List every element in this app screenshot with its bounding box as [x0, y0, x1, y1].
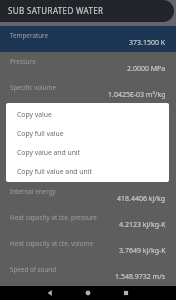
staticText: Speed of sound: [10, 265, 57, 274]
staticText: Heat capacity at cte. volume: [10, 239, 93, 248]
button[interactable]: Specific enthalpy: [0, 130, 176, 156]
staticText: 3.7649 kJ/kg-K: [119, 246, 166, 256]
staticText: 418.4406 kJ/kg: [117, 194, 166, 204]
staticText: Temperature: [10, 31, 49, 40]
staticText: Specific entropy: [10, 161, 57, 170]
button[interactable]: SUB SATURATED WATER: [0, 0, 174, 22]
staticText: Pressure: [10, 57, 36, 66]
button[interactable]: Pressure: [0, 52, 176, 78]
staticText: Copy full value: [17, 129, 64, 138]
button[interactable]: Specific entropy: [0, 156, 176, 182]
staticText: Heat capacity at cte. pressure: [10, 213, 97, 222]
button[interactable]: Copy value: [6, 105, 169, 124]
staticText: Copy value and unit: [17, 148, 81, 157]
button[interactable]: Temperature: [0, 26, 176, 52]
button[interactable]: Internal energy: [0, 182, 176, 208]
button[interactable]: Specific volume: [0, 78, 176, 104]
staticText: 4.2123 kJ/kg-K: [119, 220, 166, 230]
staticText: Density: [10, 109, 33, 118]
button[interactable]: Density: [0, 104, 176, 130]
button[interactable]: Home: [76, 286, 100, 300]
button[interactable]: Back: [38, 286, 62, 300]
staticText: Copy full value and unit: [17, 167, 92, 176]
button[interactable]: Copy value and unit: [6, 143, 169, 162]
button[interactable]: Heat capacity at cte. pressure: [0, 208, 176, 234]
button[interactable]: Recent apps: [114, 286, 138, 300]
staticText: SUB SATURATED WATER: [8, 5, 104, 16]
staticText: 1.548.9732 m/s: [115, 272, 166, 282]
button[interactable]: Speed of sound: [0, 260, 176, 286]
staticText: Copy value: [17, 110, 52, 119]
button[interactable]: Copy full value and unit: [6, 162, 169, 180]
staticText: 1.0425E-03 m³/kg: [108, 90, 166, 100]
staticText: 373.1500 K: [129, 38, 166, 48]
staticText: Specific enthalpy: [10, 135, 60, 144]
button[interactable]: Heat capacity at cte. volume: [0, 234, 176, 260]
staticText: 2.0000 MPa: [127, 64, 166, 74]
staticText: Internal energy: [10, 187, 56, 196]
staticText: Specific volume: [10, 83, 56, 92]
button[interactable]: Copy full value: [6, 124, 169, 143]
